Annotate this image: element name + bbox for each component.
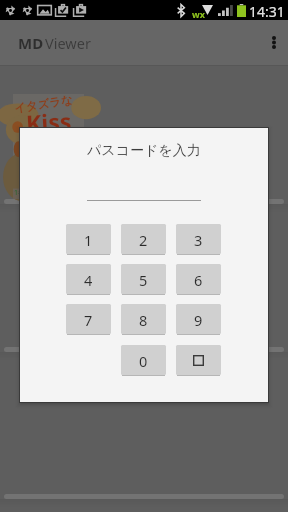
button[interactable]: 9	[176, 304, 221, 335]
button[interactable]: 5	[121, 264, 166, 295]
staticText: 3	[194, 230, 203, 250]
staticText: 1	[84, 230, 93, 250]
button[interactable]: 6	[176, 264, 221, 295]
staticText: 0	[139, 351, 148, 371]
staticText: 9	[194, 310, 203, 330]
staticText: 5	[139, 270, 148, 290]
staticText: Viewer	[45, 33, 91, 53]
staticText: 4	[84, 270, 93, 290]
button[interactable]: 0	[121, 345, 166, 376]
button[interactable]: 4	[66, 264, 111, 295]
button[interactable]: 8	[121, 304, 166, 335]
button[interactable]: Clear	[176, 345, 221, 376]
button[interactable]: 7	[66, 304, 111, 335]
staticText: パスコードを入力	[87, 142, 201, 160]
staticText: 14:31	[249, 2, 285, 21]
button[interactable]: More options	[260, 20, 288, 65]
button[interactable]: 2	[121, 224, 166, 255]
staticText: 7	[84, 310, 93, 330]
staticText: 1巻	[14, 188, 26, 198]
staticText: イタズラな	[13, 92, 74, 116]
staticText: Kiss	[25, 105, 73, 138]
staticText: 2	[139, 230, 148, 250]
staticText: 6	[194, 270, 203, 290]
staticText: 8	[139, 310, 148, 330]
staticText: wx	[192, 8, 205, 20]
button[interactable]: 3	[176, 224, 221, 255]
staticText: MD	[18, 33, 44, 53]
button[interactable]: 1	[66, 224, 111, 255]
